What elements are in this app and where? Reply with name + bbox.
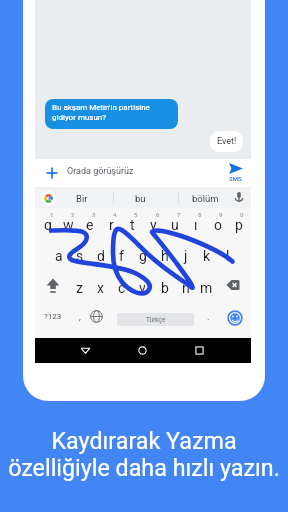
button[interactable]: c xyxy=(111,275,132,301)
staticText: . xyxy=(207,312,210,323)
button[interactable]: Emoji xyxy=(226,309,244,327)
button[interactable]: t xyxy=(122,212,143,238)
staticText: g xyxy=(139,248,147,264)
staticText: 3 xyxy=(92,211,96,218)
staticText: k xyxy=(203,248,211,264)
staticText: n xyxy=(182,280,190,296)
staticText: 7 xyxy=(177,211,181,218)
button[interactable]: e xyxy=(79,212,100,238)
button[interactable]: b xyxy=(154,275,175,301)
button[interactable]: Google search xyxy=(41,191,56,206)
button[interactable]: d xyxy=(90,243,111,269)
button[interactable]: Voice input xyxy=(233,191,245,203)
staticText: 4 xyxy=(113,211,117,218)
staticText: t xyxy=(130,217,135,233)
staticText: v xyxy=(139,280,146,296)
button[interactable]: q xyxy=(37,212,58,238)
staticText: 8 xyxy=(198,211,202,218)
button[interactable]: y xyxy=(143,212,164,238)
staticText: j xyxy=(184,248,188,264)
button[interactable]: h xyxy=(154,243,175,269)
staticText: o xyxy=(214,217,222,233)
staticText: Bir xyxy=(76,193,88,204)
staticText: 5 xyxy=(134,211,138,218)
staticText: w xyxy=(63,217,74,233)
staticText: 1 xyxy=(50,211,54,218)
button[interactable]: Change language xyxy=(90,310,103,323)
staticText: d xyxy=(97,248,105,264)
button[interactable]: l xyxy=(217,243,238,269)
staticText: h xyxy=(161,248,169,264)
staticText: r xyxy=(109,217,114,233)
staticText: m xyxy=(200,280,213,296)
staticText: bu xyxy=(135,193,146,204)
button[interactable]: Backspace xyxy=(217,272,249,298)
staticText: s xyxy=(76,248,84,264)
button[interactable]: m xyxy=(196,275,217,301)
staticText: Türkçe xyxy=(146,316,166,324)
staticText: b xyxy=(161,280,169,296)
staticText: Evet! xyxy=(217,136,237,147)
button[interactable]: v xyxy=(132,275,153,301)
button[interactable]: j xyxy=(175,243,196,269)
button[interactable]: ?123 xyxy=(37,304,69,329)
staticText: p xyxy=(235,217,243,233)
button[interactable]: , xyxy=(69,304,90,330)
staticText: x xyxy=(97,280,104,296)
button[interactable]: Back xyxy=(79,344,92,357)
button[interactable]: Recent apps xyxy=(193,344,206,357)
staticText: 2 xyxy=(71,211,75,218)
button[interactable]: o xyxy=(207,212,228,238)
button[interactable]: s xyxy=(69,243,90,269)
button[interactable]: n xyxy=(175,275,196,301)
staticText: l xyxy=(226,248,230,264)
staticText: bölüm xyxy=(192,193,219,204)
staticText: q xyxy=(44,217,52,233)
button[interactable]: z xyxy=(69,275,90,301)
button[interactable]: Add attachment xyxy=(44,165,60,181)
staticText: ı xyxy=(194,217,198,233)
staticText: f xyxy=(119,248,124,264)
staticText: z xyxy=(76,280,83,296)
button[interactable]: u xyxy=(164,212,185,238)
staticText: ?123 xyxy=(44,312,62,321)
button[interactable]: k xyxy=(196,243,217,269)
button[interactable]: p xyxy=(228,212,249,238)
button[interactable]: Home xyxy=(136,344,149,357)
button[interactable]: ı xyxy=(185,212,206,238)
staticText: Orada görüşürüz xyxy=(67,166,134,177)
staticText: c xyxy=(118,280,126,296)
button[interactable]: r xyxy=(101,212,122,238)
staticText: 6 xyxy=(156,211,160,218)
button[interactable]: Türkçe xyxy=(117,313,194,326)
button[interactable]: f xyxy=(111,243,132,269)
staticText: SMS xyxy=(229,175,242,182)
staticText: y xyxy=(150,217,157,233)
button[interactable]: x xyxy=(90,275,111,301)
staticText: , xyxy=(79,312,81,323)
button[interactable]: Shift xyxy=(37,272,69,298)
button[interactable]: g xyxy=(132,243,153,269)
staticText: 0 xyxy=(240,211,244,218)
staticText: e xyxy=(86,217,94,233)
button[interactable]: . xyxy=(198,304,219,330)
staticText: u xyxy=(171,217,179,233)
staticText: Kaydırarak Yazma özelliğiyle daha hızlı … xyxy=(0,427,288,482)
button[interactable]: w xyxy=(58,212,79,238)
staticText: Bu akşam Metin'in partisine gidiyor musu… xyxy=(52,103,150,122)
button[interactable]: Evet! xyxy=(210,131,243,152)
button[interactable]: a xyxy=(48,243,69,269)
button[interactable]: Bu akşam Metin'in partisine gidiyor musu… xyxy=(45,99,178,129)
staticText: a xyxy=(55,248,63,264)
staticText: 9 xyxy=(219,211,223,218)
button[interactable]: Send SMS xyxy=(227,161,249,185)
